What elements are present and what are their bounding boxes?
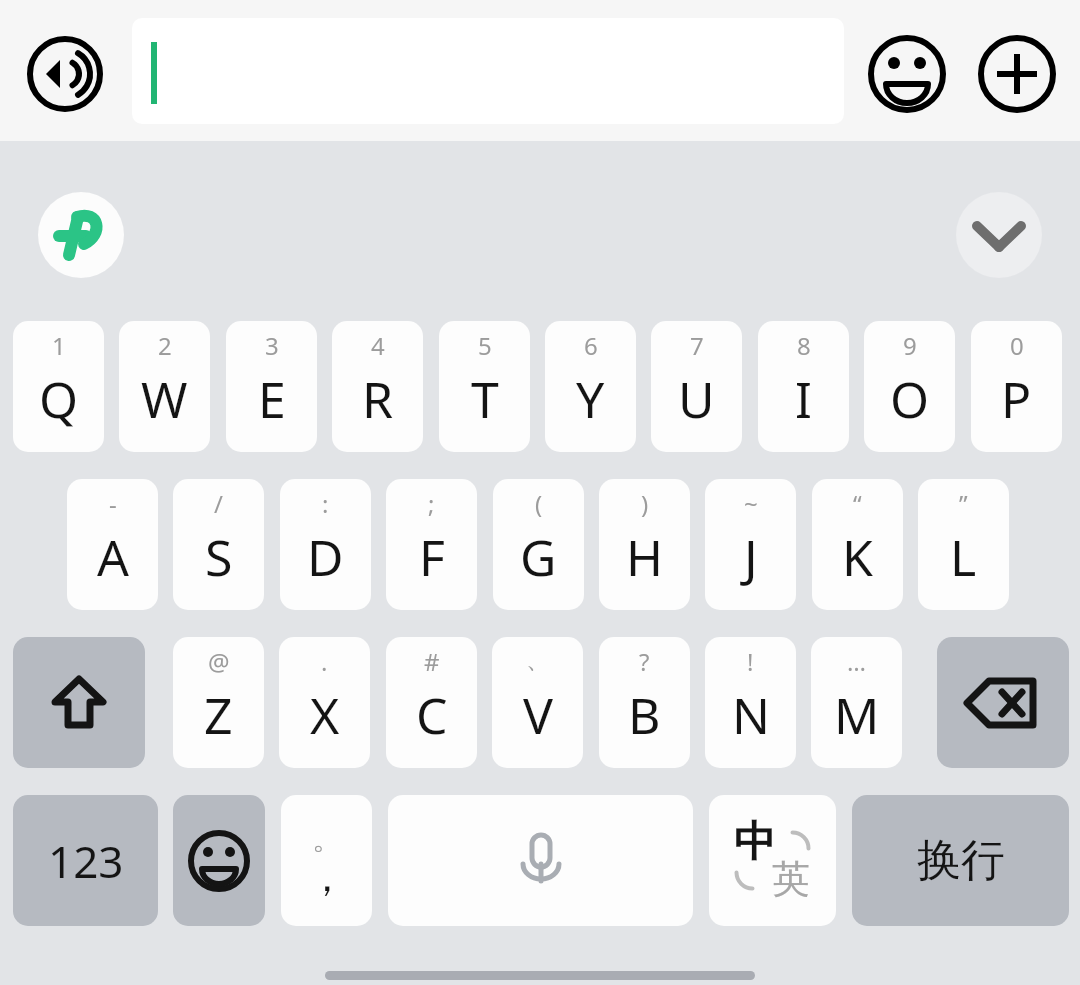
staticText: 1 — [52, 329, 66, 362]
button[interactable]: Punctuation — [281, 795, 372, 926]
staticText: 。 — [312, 820, 342, 858]
staticText: 9 — [903, 329, 917, 362]
staticText: G — [520, 523, 557, 591]
staticText: 中 — [734, 816, 776, 869]
button[interactable]: 8 — [758, 321, 849, 452]
button[interactable]: ? — [599, 637, 690, 768]
button[interactable]: Emoji keyboard — [173, 795, 265, 926]
staticText: R — [362, 365, 394, 433]
button[interactable]: Voice input — [27, 36, 103, 112]
button[interactable]: 9 — [864, 321, 955, 452]
staticText: 7 — [690, 329, 704, 362]
staticText: ” — [959, 487, 968, 520]
staticText: T — [471, 365, 499, 433]
staticText: . — [321, 645, 328, 678]
staticText: D — [307, 523, 344, 591]
button[interactable]: 1 — [13, 321, 104, 452]
button[interactable]: 3 — [226, 321, 317, 452]
staticText: 6 — [584, 329, 598, 362]
staticText: 0 — [1010, 329, 1024, 362]
staticText: : — [322, 487, 329, 520]
staticText: L — [950, 523, 977, 591]
staticText: S — [205, 523, 233, 591]
staticText: F — [419, 523, 445, 591]
staticText: W — [141, 365, 188, 433]
button[interactable]: Input method logo — [38, 192, 124, 278]
button[interactable] — [132, 18, 844, 124]
staticText: X — [310, 681, 340, 749]
button[interactable]: 2 — [119, 321, 210, 452]
staticText: E — [258, 365, 286, 433]
staticText: “ — [853, 487, 862, 520]
button[interactable]: 4 — [332, 321, 423, 452]
staticText: ， — [307, 852, 347, 902]
staticText: 4 — [371, 329, 385, 362]
button[interactable]: Shift — [13, 637, 145, 768]
staticText: 8 — [797, 329, 811, 362]
staticText: J — [744, 523, 758, 591]
button[interactable]: … — [811, 637, 902, 768]
staticText: H — [626, 523, 664, 591]
staticText: K — [842, 523, 873, 591]
staticText: P — [1001, 365, 1032, 433]
button[interactable]: Space — [388, 795, 693, 926]
staticText: I — [795, 365, 812, 433]
button[interactable]: Backspace — [937, 637, 1069, 768]
staticText: V — [523, 681, 553, 749]
staticText: O — [890, 365, 930, 433]
staticText: 换行 — [917, 833, 1005, 888]
staticText: - — [109, 487, 117, 520]
button[interactable]: Hide keyboard — [956, 192, 1042, 278]
button[interactable]: ; — [386, 479, 477, 610]
button[interactable]: ” — [918, 479, 1009, 610]
button[interactable]: Add — [978, 35, 1056, 113]
button[interactable]: . — [279, 637, 370, 768]
staticText: B — [628, 681, 661, 749]
button[interactable]: Emoji — [868, 35, 946, 113]
staticText: ) — [641, 487, 649, 520]
staticText: C — [416, 681, 448, 749]
staticText: / — [214, 487, 223, 520]
staticText: U — [678, 365, 715, 433]
button[interactable]: “ — [812, 479, 903, 610]
staticText: … — [847, 645, 866, 678]
staticText: M — [834, 681, 880, 749]
staticText: # — [424, 645, 440, 678]
button[interactable]: 5 — [439, 321, 530, 452]
staticText: Y — [576, 365, 605, 433]
staticText: @ — [208, 645, 230, 678]
staticText: 3 — [265, 329, 279, 362]
button[interactable]: - — [67, 479, 158, 610]
button[interactable]: Enter — [852, 795, 1069, 926]
button[interactable]: / — [173, 479, 264, 610]
button[interactable]: 7 — [651, 321, 742, 452]
button[interactable]: # — [386, 637, 477, 768]
staticText: ~ — [744, 487, 758, 520]
button[interactable]: ) — [599, 479, 690, 610]
button[interactable]: 6 — [545, 321, 636, 452]
staticText: ( — [535, 487, 543, 520]
button[interactable]: Numbers — [13, 795, 158, 926]
staticText: ! — [747, 645, 754, 678]
staticText: 英 — [772, 855, 810, 903]
staticText: A — [97, 523, 129, 591]
button[interactable]: @ — [173, 637, 264, 768]
staticText: 123 — [48, 831, 124, 891]
button[interactable]: : — [280, 479, 371, 610]
staticText: 5 — [478, 329, 492, 362]
staticText: ; — [428, 487, 435, 520]
button[interactable]: ( — [493, 479, 584, 610]
button[interactable]: ~ — [705, 479, 796, 610]
staticText: 、 — [526, 645, 550, 675]
staticText: Z — [204, 681, 233, 749]
staticText: N — [732, 681, 770, 749]
button[interactable]: Chinese English toggle — [709, 795, 836, 926]
staticText: Q — [39, 365, 79, 433]
button[interactable]: 0 — [971, 321, 1062, 452]
button[interactable]: ! — [705, 637, 796, 768]
staticText: ? — [639, 645, 650, 678]
staticText: 2 — [158, 329, 172, 362]
button[interactable]: 、 — [492, 637, 583, 768]
